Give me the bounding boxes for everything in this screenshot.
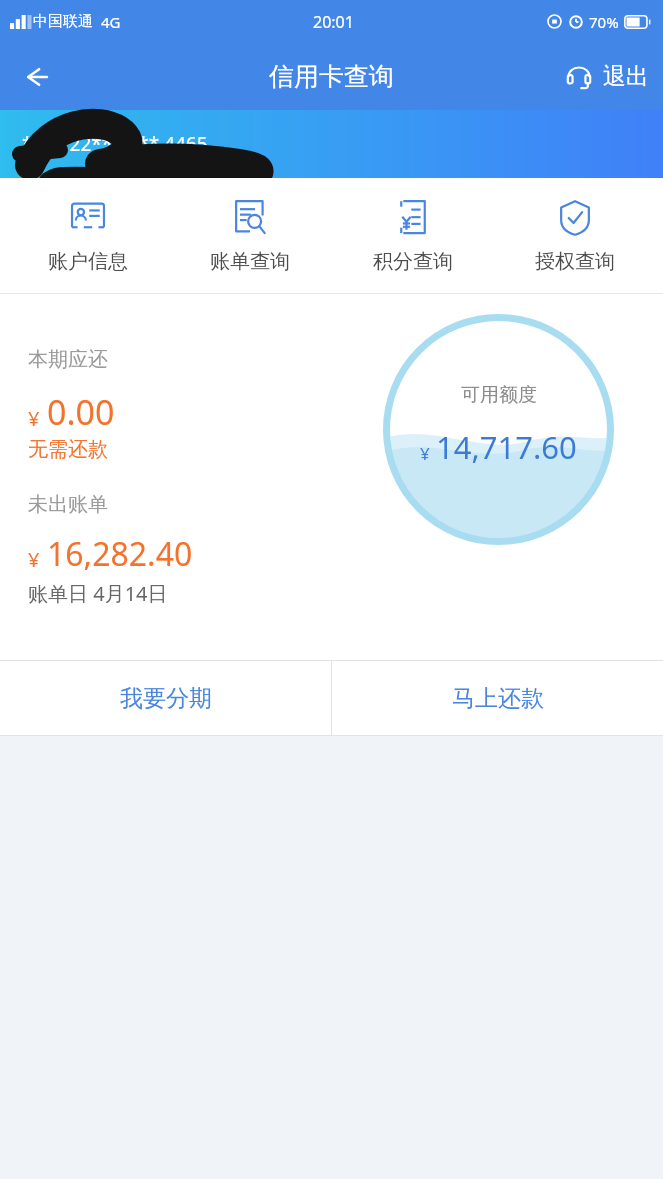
staticText: 4G bbox=[101, 12, 121, 32]
staticText: 14,717.60 bbox=[436, 426, 577, 468]
staticText: 积分查询 bbox=[373, 249, 453, 274]
staticText: 16,282.40 bbox=[47, 532, 193, 576]
staticText: 账户信息 bbox=[48, 249, 128, 274]
staticText: 账单日 4月14日 bbox=[28, 580, 168, 607]
staticText: 本期应还 bbox=[28, 347, 108, 372]
staticText: 退出 bbox=[603, 62, 649, 91]
staticText: 无需还款 bbox=[28, 437, 108, 462]
staticText: 中国联通 bbox=[33, 12, 93, 31]
staticText: ¥ bbox=[420, 442, 430, 465]
staticText: 授权查询 bbox=[535, 249, 615, 274]
staticText: 我要分期 bbox=[120, 684, 212, 713]
button[interactable]: 我要分期 bbox=[0, 661, 331, 735]
button[interactable]: 账单查询 bbox=[175, 191, 325, 280]
other: Customer service bbox=[565, 63, 593, 91]
staticText: 未出账单 bbox=[28, 492, 108, 517]
staticText: **29 22** **** 4465 bbox=[22, 131, 208, 157]
button[interactable]: 积分查询 bbox=[338, 191, 488, 280]
button[interactable]: 马上还款 bbox=[332, 661, 663, 735]
staticText: ¥ bbox=[28, 405, 40, 432]
staticText: ¥ bbox=[28, 546, 40, 573]
button[interactable]: Customer service bbox=[565, 62, 649, 91]
button[interactable]: **29 22** **** 4465 bbox=[0, 110, 663, 178]
staticText: 可用额度 bbox=[461, 383, 537, 407]
staticText: 信用卡查询 bbox=[269, 61, 394, 92]
staticText: 0.00 bbox=[47, 389, 115, 435]
staticText: 马上还款 bbox=[452, 684, 544, 713]
button[interactable]: Back bbox=[8, 49, 64, 105]
staticText: 账单查询 bbox=[210, 249, 290, 274]
staticText: 70% bbox=[589, 12, 619, 32]
button[interactable]: 账户信息 bbox=[13, 191, 163, 280]
button[interactable]: 授权查询 bbox=[500, 191, 650, 280]
staticText: 20:01 bbox=[313, 11, 354, 33]
